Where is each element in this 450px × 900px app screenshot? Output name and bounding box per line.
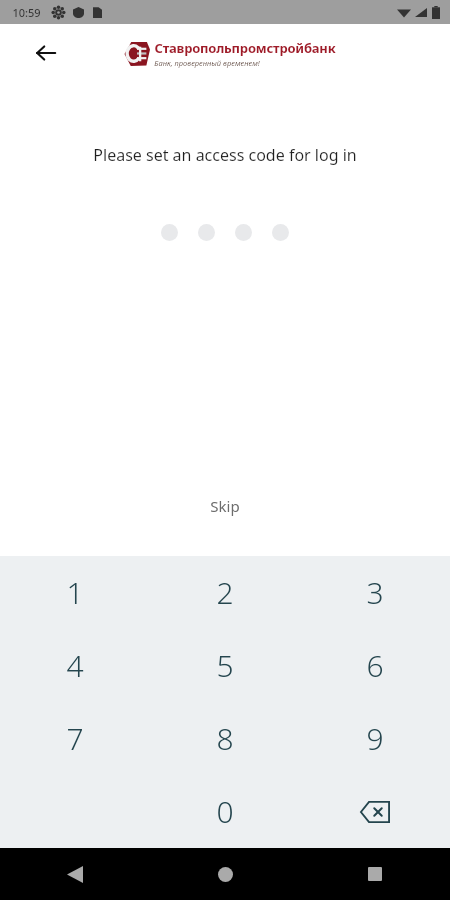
staticText: 3 bbox=[366, 572, 384, 613]
button[interactable]: Delete bbox=[300, 775, 450, 848]
staticText: 8 bbox=[216, 718, 234, 759]
button[interactable]: 5 bbox=[150, 629, 300, 702]
staticText: 6 bbox=[366, 645, 384, 686]
button[interactable]: 3 bbox=[300, 556, 450, 629]
button[interactable]: Recent apps bbox=[300, 848, 450, 900]
button[interactable]: 4 bbox=[0, 629, 150, 702]
staticText: 9 bbox=[366, 718, 384, 759]
button[interactable]: 0 bbox=[150, 775, 300, 848]
staticText: 7 bbox=[66, 718, 84, 759]
button[interactable]: 7 bbox=[0, 702, 150, 775]
staticText: Ставропольпромстройбанк bbox=[154, 39, 336, 57]
button[interactable]: 9 bbox=[300, 702, 450, 775]
button[interactable]: Skip bbox=[186, 486, 264, 526]
button[interactable]: 1 bbox=[0, 556, 150, 629]
staticText: 2 bbox=[216, 572, 234, 613]
staticText: 10:59 bbox=[12, 5, 41, 20]
button[interactable]: Home bbox=[150, 848, 300, 900]
button[interactable]: 6 bbox=[300, 629, 450, 702]
staticText: 1 bbox=[66, 572, 84, 613]
staticText: Skip bbox=[210, 496, 240, 516]
button[interactable]: Back bbox=[0, 848, 150, 900]
staticText: 4 bbox=[66, 645, 84, 686]
staticText: Банк, проверенный временем! bbox=[154, 58, 260, 68]
staticText: 0 bbox=[216, 791, 234, 832]
button[interactable]: Back bbox=[26, 33, 66, 73]
button[interactable]: 8 bbox=[150, 702, 300, 775]
staticText: 5 bbox=[216, 645, 234, 686]
staticText: Please set an access code for log in bbox=[93, 144, 357, 166]
button[interactable]: 2 bbox=[150, 556, 300, 629]
